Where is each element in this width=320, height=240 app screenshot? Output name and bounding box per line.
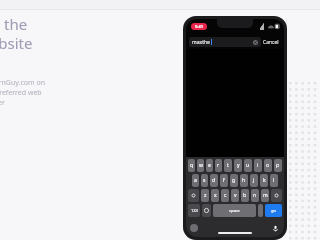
button[interactable]: go [265,204,282,217]
button[interactable]: r [215,159,222,172]
button[interactable]: a [192,174,199,187]
button[interactable]: Cancel [261,37,281,48]
staticText: c [224,192,227,199]
staticText: o [266,162,270,169]
staticText: k [263,177,266,184]
button[interactable]: d [210,174,218,187]
button[interactable]: c [221,189,229,202]
button[interactable]: Emoji [202,204,211,217]
staticText: space [229,208,240,213]
staticText: p [276,162,280,169]
button[interactable]: p [274,159,282,172]
button[interactable]: k [260,174,268,187]
button[interactable]: w [197,159,204,172]
staticText: f [223,177,225,184]
button[interactable]: v [231,189,239,202]
button[interactable]: Change keyboard [190,224,198,232]
button[interactable]: o [264,159,272,172]
other: Clear text [253,40,258,45]
button[interactable]: e [206,159,213,172]
staticText: q [190,162,194,169]
button[interactable]: t [224,159,232,172]
button[interactable]: u [244,159,252,172]
staticText: 123 [191,208,198,213]
button[interactable]: l [270,174,278,187]
staticText: Cancel [263,39,279,46]
button[interactable]: f [220,174,228,187]
staticText: Set the website [0,14,33,53]
staticText: z [204,192,207,199]
button[interactable]: h [240,174,248,187]
button[interactable]: m [261,189,269,202]
button[interactable]: y [234,159,242,172]
button[interactable]: z [201,189,209,202]
staticText: l [273,177,275,184]
button[interactable]: n [251,189,259,202]
button[interactable]: q [188,159,195,172]
staticText: v [234,192,237,199]
staticText: n [253,192,257,199]
staticText: w [199,162,203,169]
staticText: b [243,192,247,199]
button[interactable]: b [241,189,249,202]
staticText: go [271,208,276,213]
staticText: y [237,162,240,169]
button[interactable]: Period [258,204,263,217]
staticText: h [242,177,246,184]
staticText: 9:41 [195,24,203,29]
button[interactable]: i [254,159,262,172]
button[interactable]: x [211,189,219,202]
staticText: i [257,162,259,169]
other: Dictation [272,225,279,232]
staticText: d [212,177,216,184]
button[interactable]: j [250,174,258,187]
staticText: m [263,192,268,199]
staticText: t [227,162,229,169]
button[interactable]: Backspace [271,189,282,202]
staticText: g [232,177,236,184]
button[interactable]: space [213,204,256,217]
staticText: r [217,162,220,169]
button[interactable]: maxthe [189,37,261,47]
staticText: j [253,177,255,184]
staticText: x [214,192,217,199]
staticText: Go to ThePornGuy.com on your preferred w… [0,67,45,107]
staticText: maxthe [192,39,210,46]
button[interactable]: Shift [188,189,199,202]
staticText: a [194,177,197,184]
button[interactable]: s [201,174,208,187]
button[interactable]: g [230,174,238,187]
staticText: u [246,162,250,169]
staticText: s [203,177,206,184]
staticText: e [208,162,211,169]
button[interactable]: 123 [188,204,200,217]
